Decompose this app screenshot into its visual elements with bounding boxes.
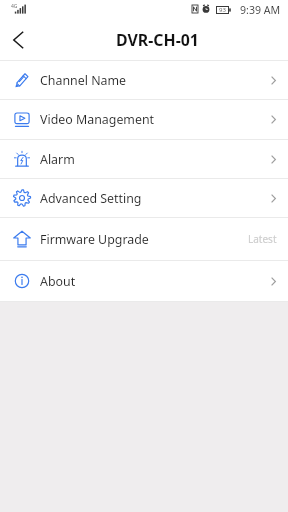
staticText: Alarm: [40, 151, 75, 168]
staticText: 93: [219, 6, 226, 14]
staticText: 4G: [11, 3, 18, 10]
staticText: Latest: [248, 232, 277, 246]
staticText: Video Management: [40, 111, 155, 128]
button[interactable]: About: [0, 261, 288, 301]
staticText: DVR-CH-01: [116, 29, 199, 51]
button[interactable]: Back: [0, 22, 36, 58]
button[interactable]: Firmware Upgrade: [0, 218, 288, 260]
button[interactable]: Alarm: [0, 140, 288, 178]
staticText: Firmware Upgrade: [40, 231, 149, 248]
staticText: About: [40, 273, 76, 290]
staticText: Channel Name: [40, 72, 127, 89]
button[interactable]: Video Management: [0, 100, 288, 139]
staticText: Advanced Setting: [40, 190, 142, 207]
staticText: 9:39 AM: [240, 3, 281, 17]
button[interactable]: Advanced Setting: [0, 179, 288, 217]
button[interactable]: Channel Name: [0, 61, 288, 99]
